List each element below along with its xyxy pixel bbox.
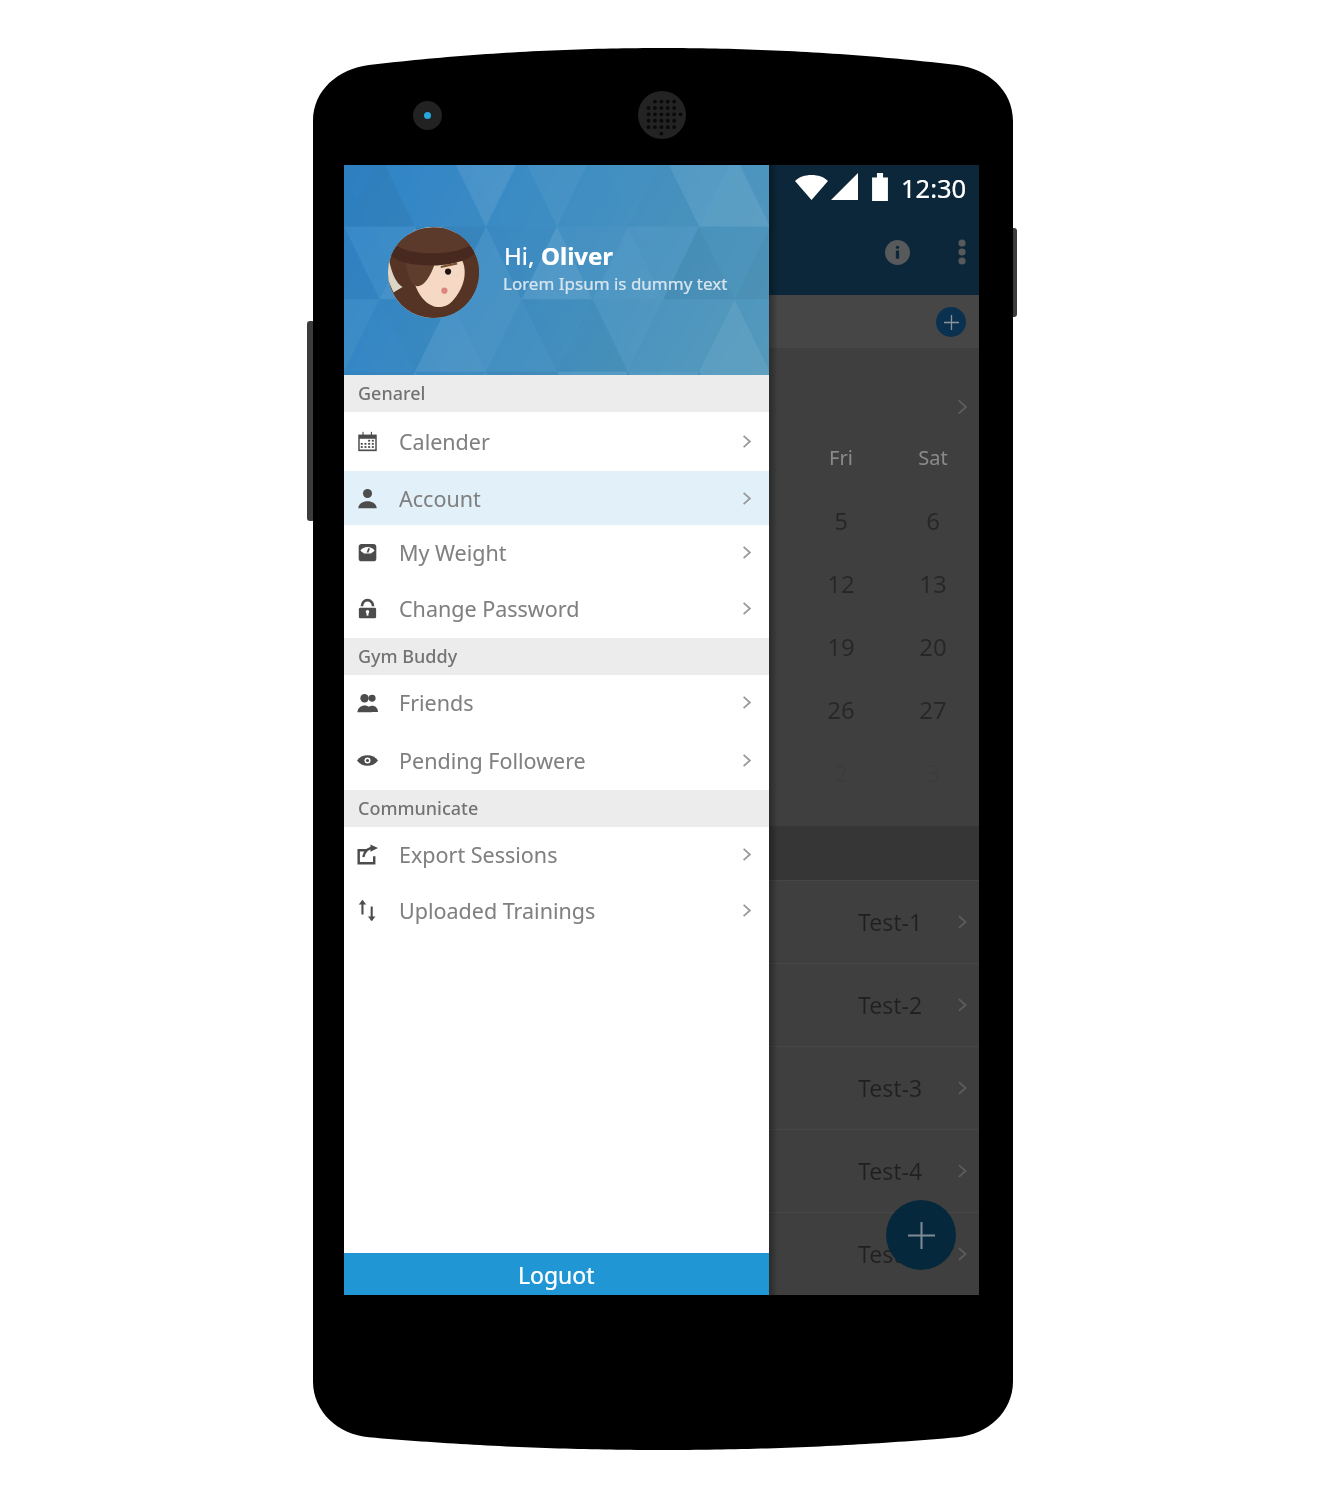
button[interactable]: Test-1: [344, 880, 979, 963]
button[interactable]: Test-2: [344, 963, 979, 1046]
button[interactable]: My Weight: [344, 525, 769, 579]
staticText: Lorem Ipsum is dummy text: [503, 272, 728, 295]
button[interactable]: Uploaded Trainings: [344, 882, 769, 939]
staticText: Test-2: [858, 989, 923, 1020]
staticText: Test-4: [858, 1155, 923, 1186]
staticText: 26: [827, 693, 855, 726]
staticText: 13: [919, 567, 947, 600]
staticText: Communicate: [358, 796, 479, 821]
button[interactable]: Add session: [886, 1200, 956, 1270]
button[interactable]: Add: [936, 307, 966, 337]
button[interactable]: Export Sessions: [344, 827, 769, 882]
staticText: 6: [926, 504, 940, 537]
button[interactable]: Loguot: [344, 1253, 769, 1295]
staticText: Gym Buddy: [358, 644, 458, 669]
staticText: 19: [827, 630, 855, 663]
button[interactable]: Calender: [344, 412, 769, 471]
staticText: Calender: [399, 427, 490, 456]
button[interactable]: Test-3: [344, 1046, 979, 1129]
staticText: Fri: [829, 444, 853, 471]
staticText: Pending Followere: [399, 746, 586, 775]
button[interactable]: Pending Followere: [344, 730, 769, 790]
staticText: Sat: [918, 444, 948, 471]
button[interactable]: Info: [875, 230, 919, 274]
staticText: Test-1: [858, 906, 923, 937]
button[interactable]: Account: [344, 471, 769, 525]
staticText: Change Password: [399, 594, 580, 623]
staticText: Oliver: [541, 239, 614, 272]
button[interactable]: Change Password: [344, 579, 769, 638]
staticText: My Weight: [399, 538, 507, 567]
staticText: Account: [399, 484, 481, 513]
staticText: Loguot: [518, 1259, 595, 1290]
staticText: Hi,: [504, 239, 541, 272]
staticText: 12:30: [901, 171, 967, 206]
button[interactable]: Test-5: [344, 1212, 979, 1295]
button[interactable]: More options: [940, 230, 979, 274]
staticText: 12: [827, 567, 855, 600]
staticText: 5: [834, 504, 848, 537]
staticText: 27: [919, 693, 947, 726]
staticText: Test-3: [858, 1072, 923, 1103]
button[interactable]: Test-4: [344, 1129, 979, 1212]
staticText: Test-5: [858, 1238, 923, 1269]
staticText: Uploaded Trainings: [399, 896, 596, 925]
staticText: Export Sessions: [399, 840, 558, 869]
button[interactable]: Friends: [344, 675, 769, 730]
staticText: Friends: [399, 688, 474, 717]
staticText: 20: [919, 630, 947, 663]
staticText: Genarel: [358, 381, 426, 406]
